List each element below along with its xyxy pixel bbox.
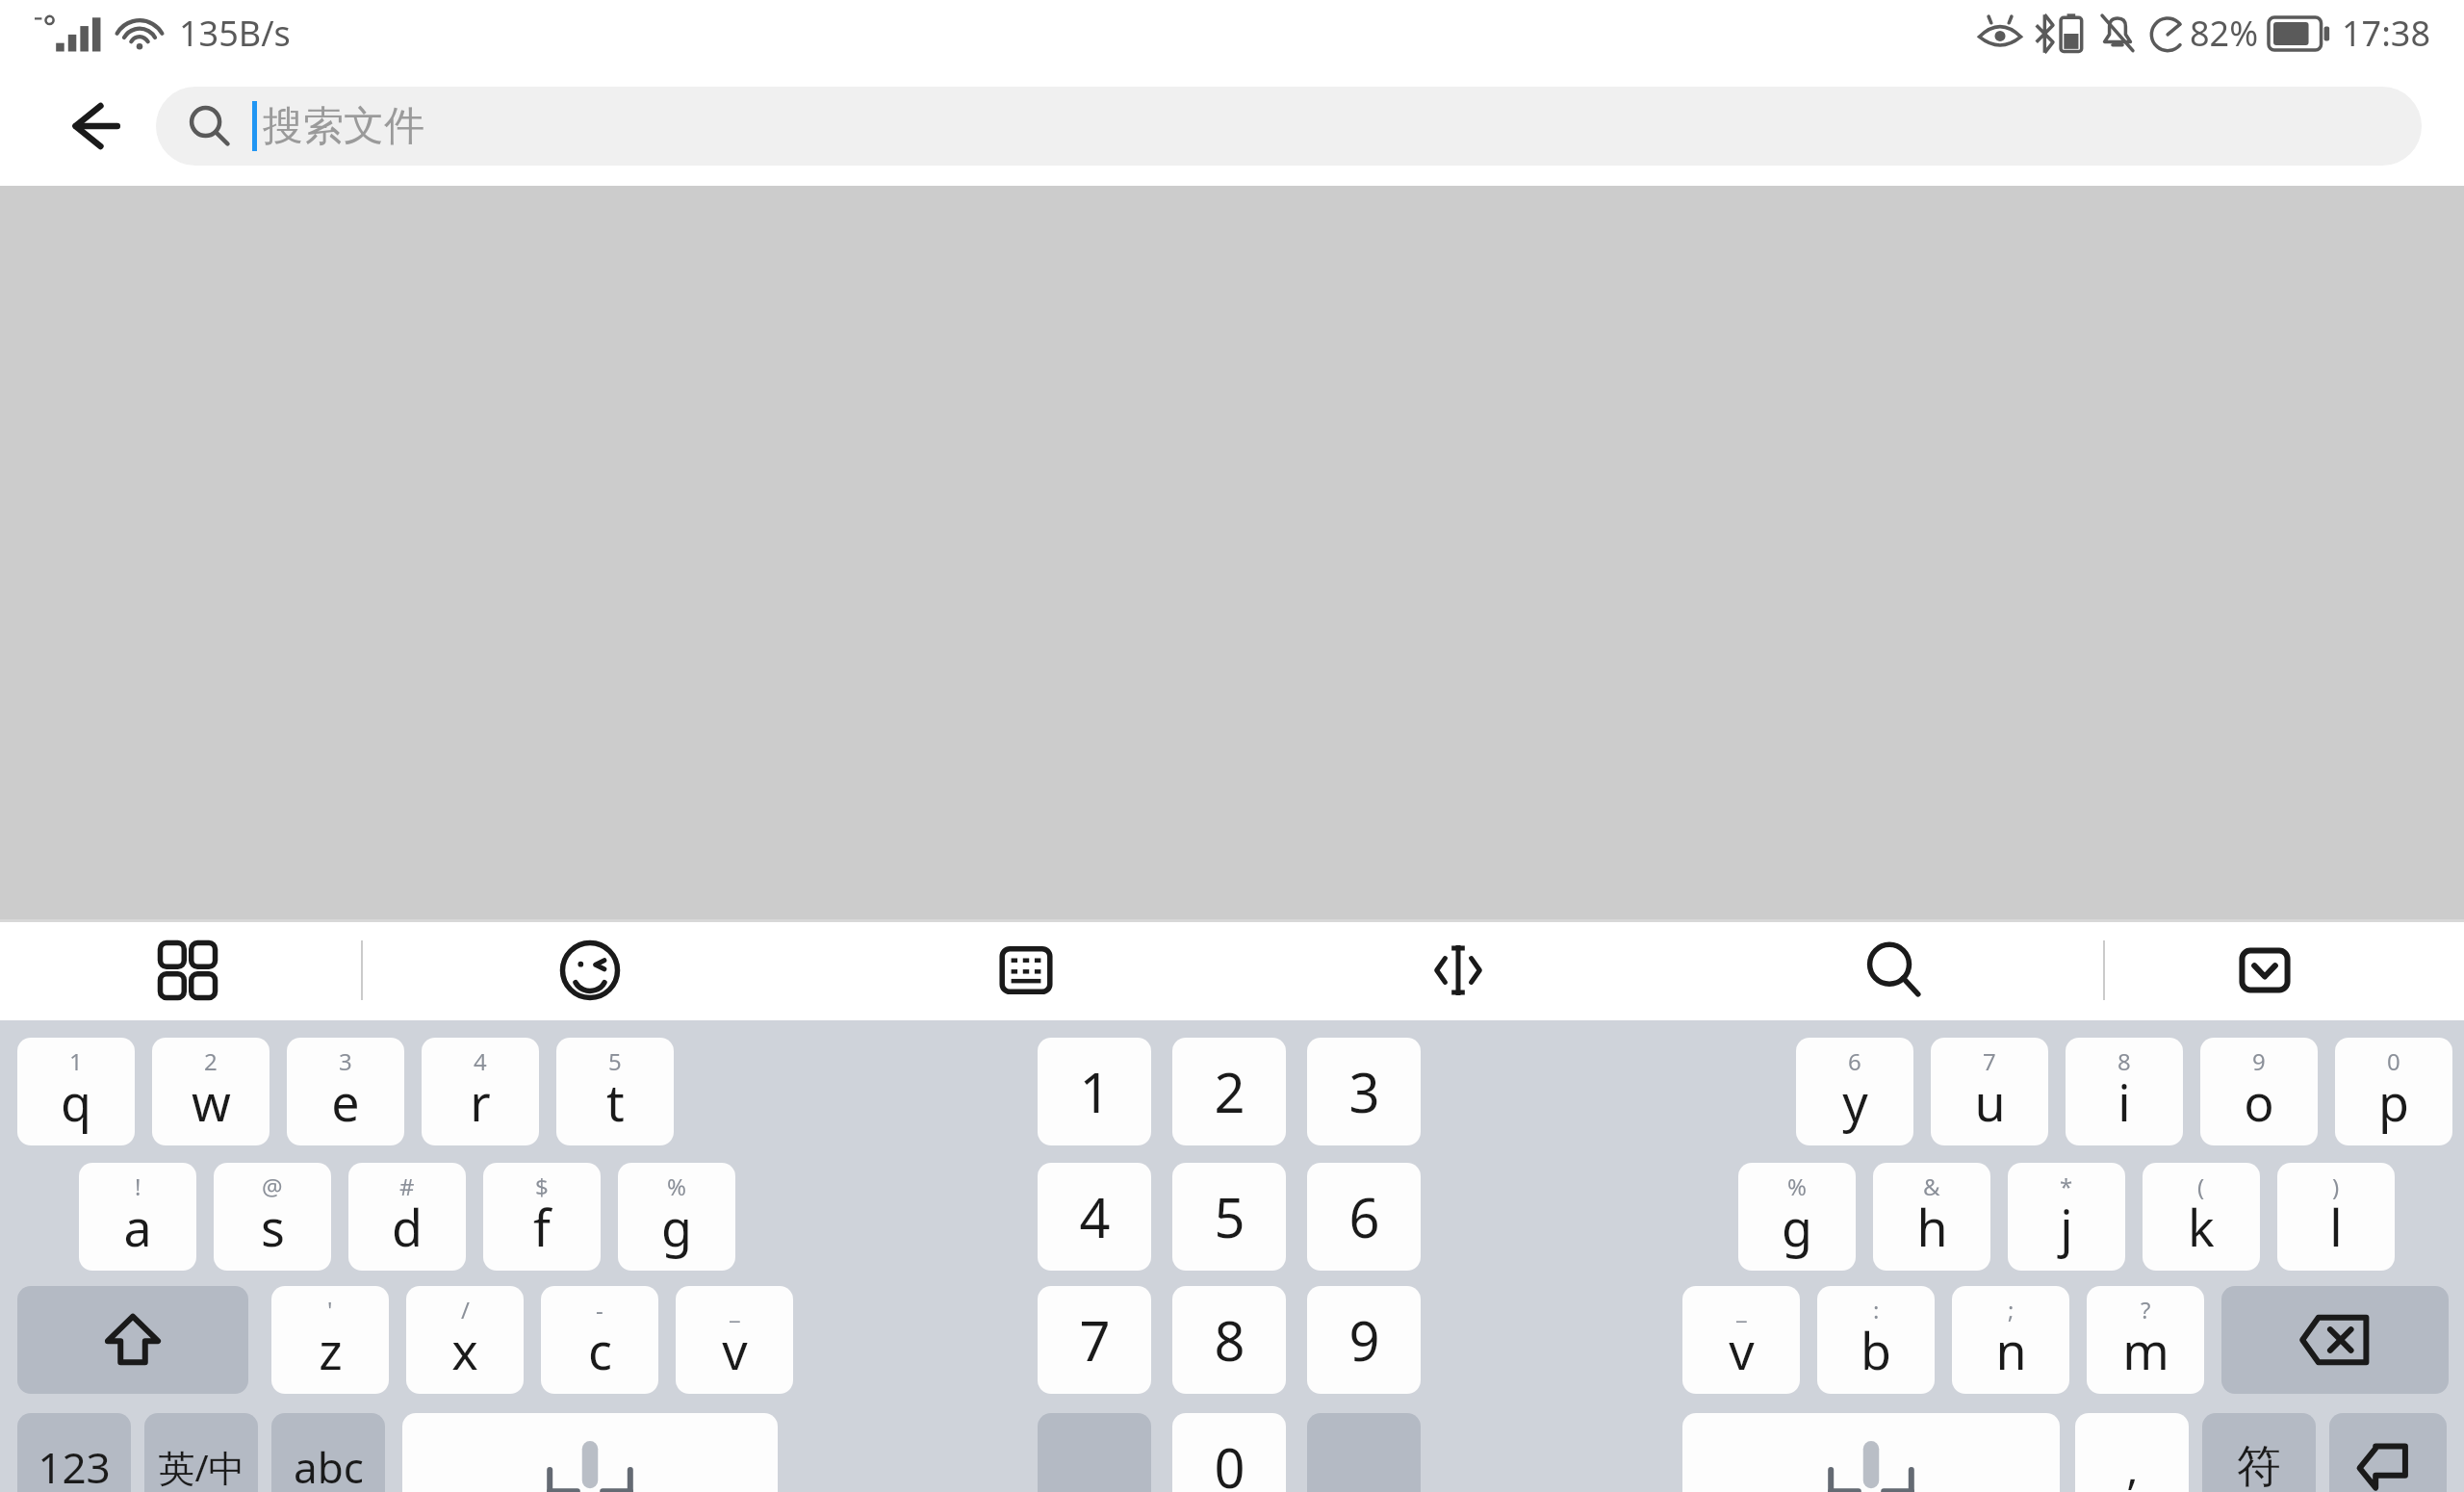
button[interactable]: key [1307, 1413, 1421, 1492]
staticText: / [461, 1294, 470, 1325]
staticText: v [722, 1316, 748, 1384]
staticText: @ [262, 1170, 283, 1202]
button[interactable]: _ [1682, 1286, 1800, 1394]
button[interactable]: space [402, 1413, 778, 1492]
button[interactable]: # [348, 1163, 466, 1271]
staticText: k [2188, 1193, 2215, 1261]
button[interactable]: Keyboard tool [549, 929, 631, 1012]
staticText: _ [1736, 1294, 1747, 1325]
button[interactable]: space [1682, 1413, 2060, 1492]
staticText: g [661, 1193, 692, 1261]
button[interactable]: del [2221, 1286, 2449, 1394]
button[interactable]: Back [40, 73, 146, 179]
button[interactable]: Keyboard tool [2223, 929, 2306, 1012]
button[interactable]: 6 [1307, 1163, 1421, 1271]
staticText: , [2126, 1437, 2139, 1492]
button[interactable]: % [1738, 1163, 1856, 1271]
staticText: 4 [1079, 1180, 1111, 1253]
button[interactable]: 4 [1038, 1163, 1151, 1271]
staticText: : [1873, 1294, 1880, 1325]
button[interactable]: 3 [1307, 1038, 1421, 1145]
button[interactable]: Keyboard tool [1853, 929, 1936, 1012]
button[interactable]: - [541, 1286, 658, 1394]
staticText: d [392, 1193, 423, 1261]
staticText: b [1861, 1316, 1891, 1384]
button[interactable]: 7 [1931, 1038, 2048, 1145]
button[interactable]: 2 [152, 1038, 269, 1145]
button[interactable]: / [406, 1286, 524, 1394]
button[interactable]: % [618, 1163, 735, 1271]
staticText: 2 [1214, 1055, 1245, 1128]
staticText: 8 [1214, 1303, 1245, 1376]
button[interactable]: 3 [287, 1038, 404, 1145]
button[interactable]: $ [483, 1163, 601, 1271]
button[interactable]: * [2008, 1163, 2125, 1271]
button[interactable]: 123 [17, 1413, 131, 1492]
button[interactable]: Keyboard tool [985, 929, 1067, 1012]
staticText: # [399, 1170, 415, 1202]
button[interactable]: ! [79, 1163, 196, 1271]
button[interactable]: 7 [1038, 1286, 1151, 1394]
staticText: 0 [1214, 1430, 1245, 1492]
button[interactable]: key [1038, 1413, 1151, 1492]
button[interactable]: ( [2143, 1163, 2260, 1271]
staticText: 4 [474, 1045, 487, 1077]
button[interactable]: 0 [1172, 1413, 1286, 1492]
button[interactable]: 9 [2200, 1038, 2318, 1145]
button[interactable]: 5 [1172, 1163, 1286, 1271]
button[interactable]: 5 [556, 1038, 674, 1145]
button[interactable]: 9 [1307, 1286, 1421, 1394]
staticText: w [192, 1068, 231, 1136]
button[interactable]: , [2075, 1413, 2189, 1492]
button[interactable]: Keyboard tool [146, 929, 229, 1012]
staticText: r [470, 1068, 491, 1136]
button[interactable]: @ [214, 1163, 331, 1271]
button[interactable]: _ [676, 1286, 793, 1394]
button[interactable]: abc [271, 1413, 385, 1492]
staticText: 2 [204, 1045, 218, 1077]
button[interactable]: ? [2087, 1286, 2204, 1394]
button[interactable]: 8 [2066, 1038, 2183, 1145]
staticText: _ [730, 1294, 740, 1325]
staticText: l [2329, 1193, 2343, 1261]
staticText: & [1923, 1170, 1940, 1202]
button[interactable]: 6 [1796, 1038, 1913, 1145]
staticText: h [1916, 1193, 1948, 1261]
staticText: 3 [1348, 1055, 1380, 1128]
staticText: 9 [2252, 1045, 2266, 1077]
button[interactable]: 4 [422, 1038, 539, 1145]
staticText: i [2117, 1068, 2131, 1136]
staticText: e [331, 1068, 360, 1136]
button[interactable]: ; [1952, 1286, 2069, 1394]
button[interactable]: shift [17, 1286, 248, 1394]
button[interactable]: & [1873, 1163, 1990, 1271]
button[interactable]: Keyboard tool [1417, 929, 1500, 1012]
button[interactable]: 1 [1038, 1038, 1151, 1145]
button[interactable]: : [1817, 1286, 1935, 1394]
staticText: o [2244, 1068, 2274, 1136]
staticText: 英/中 [158, 1442, 245, 1492]
staticText: 1 [1079, 1055, 1111, 1128]
button[interactable]: 符 [2202, 1413, 2316, 1492]
button[interactable]: 英/中 [144, 1413, 258, 1492]
staticText: u [1974, 1068, 2006, 1136]
staticText: 7 [1983, 1045, 1996, 1077]
button[interactable]: 1 [17, 1038, 135, 1145]
button[interactable]: 搜索文件 [156, 87, 2422, 166]
button[interactable]: 2 [1172, 1038, 1286, 1145]
staticText: 123 [38, 1438, 111, 1492]
staticText: - [596, 1294, 603, 1325]
staticText: 8 [2117, 1045, 2131, 1077]
staticText: f [533, 1193, 551, 1261]
staticText: ? [2141, 1294, 2151, 1325]
staticText: 3 [339, 1045, 352, 1077]
button[interactable]: enter [2329, 1413, 2447, 1492]
staticText: g [1782, 1193, 1812, 1261]
staticText: s [261, 1193, 285, 1261]
button[interactable]: 8 [1172, 1286, 1286, 1394]
button[interactable]: ' [271, 1286, 389, 1394]
staticText: 1 [69, 1045, 83, 1077]
button[interactable]: ) [2277, 1163, 2395, 1271]
staticText: 5 [608, 1045, 622, 1077]
button[interactable]: 0 [2335, 1038, 2452, 1145]
